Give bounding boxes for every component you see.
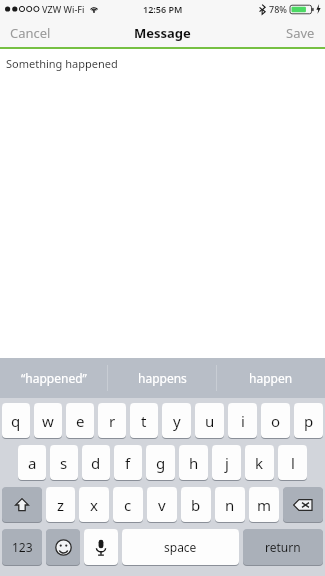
button[interactable]: w xyxy=(34,403,62,438)
staticText: k xyxy=(255,453,264,473)
staticText: “happened” xyxy=(21,370,87,386)
staticText: Something happened xyxy=(6,56,118,71)
button[interactable]: v xyxy=(147,487,177,522)
staticText: l xyxy=(291,453,295,473)
button[interactable]: a xyxy=(18,445,46,480)
staticText: m xyxy=(257,495,272,515)
button[interactable]: x xyxy=(79,487,109,522)
button[interactable]: b xyxy=(181,487,211,522)
button[interactable]: q xyxy=(2,403,30,438)
staticText: 12:56 PM xyxy=(143,3,183,15)
staticText: space xyxy=(164,539,197,555)
staticText: Save xyxy=(286,24,315,42)
staticText: w xyxy=(42,411,54,431)
button[interactable]: i xyxy=(228,403,257,438)
staticText: o xyxy=(271,411,281,431)
button[interactable]: Shift xyxy=(2,487,42,522)
staticText: j xyxy=(225,453,229,473)
button[interactable]: j xyxy=(212,445,241,480)
staticText: z xyxy=(57,495,65,515)
staticText: u xyxy=(205,411,215,431)
staticText: e xyxy=(76,411,85,431)
button[interactable]: happen xyxy=(217,358,325,398)
button[interactable]: y xyxy=(162,403,191,438)
staticText: a xyxy=(28,453,37,473)
button[interactable]: space xyxy=(122,529,239,565)
button[interactable]: f xyxy=(114,445,142,480)
button[interactable]: m xyxy=(249,487,279,522)
button[interactable]: u xyxy=(195,403,224,438)
staticText: happen xyxy=(249,370,293,386)
staticText: r xyxy=(109,411,116,431)
staticText: return xyxy=(265,539,301,555)
staticText: b xyxy=(191,495,201,515)
staticText: n xyxy=(225,495,235,515)
staticText: g xyxy=(156,453,166,473)
button[interactable]: h xyxy=(179,445,208,480)
staticText: h xyxy=(189,453,199,473)
button[interactable]: Backspace xyxy=(283,487,323,522)
staticText: Cancel xyxy=(10,24,51,42)
staticText: f xyxy=(125,453,131,473)
staticText: 78% xyxy=(269,3,287,15)
button[interactable]: l xyxy=(278,445,307,480)
staticText: v xyxy=(158,495,166,515)
staticText: i xyxy=(241,411,245,431)
staticText: t xyxy=(141,411,147,431)
button[interactable]: happens xyxy=(108,358,216,398)
staticText: 123 xyxy=(12,539,33,555)
staticText: c xyxy=(124,495,132,515)
button[interactable]: n xyxy=(215,487,245,522)
button[interactable]: z xyxy=(46,487,75,522)
staticText: d xyxy=(91,453,101,473)
staticText: VZW Wi-Fi xyxy=(42,3,85,15)
button[interactable]: Dictation xyxy=(84,529,118,565)
button[interactable]: Emoji xyxy=(46,529,80,565)
staticText: q xyxy=(11,411,21,431)
button[interactable]: Save xyxy=(276,19,325,47)
button[interactable]: c xyxy=(113,487,143,522)
button[interactable]: return xyxy=(243,529,323,565)
button[interactable]: d xyxy=(82,445,110,480)
staticText: s xyxy=(60,453,68,473)
button[interactable]: s xyxy=(50,445,78,480)
staticText: Message xyxy=(134,24,191,42)
button[interactable]: p xyxy=(294,403,323,438)
button[interactable]: r xyxy=(98,403,126,438)
button[interactable]: “happened” xyxy=(0,358,107,398)
button[interactable]: e xyxy=(66,403,94,438)
staticText: x xyxy=(90,495,98,515)
staticText: p xyxy=(304,411,314,431)
button[interactable]: o xyxy=(261,403,290,438)
staticText: happens xyxy=(138,370,187,386)
button[interactable]: Cancel xyxy=(0,19,61,47)
button[interactable]: t xyxy=(130,403,158,438)
staticText: y xyxy=(173,411,181,431)
button[interactable]: 123 xyxy=(2,529,42,565)
button[interactable]: k xyxy=(245,445,274,480)
button[interactable]: g xyxy=(146,445,175,480)
